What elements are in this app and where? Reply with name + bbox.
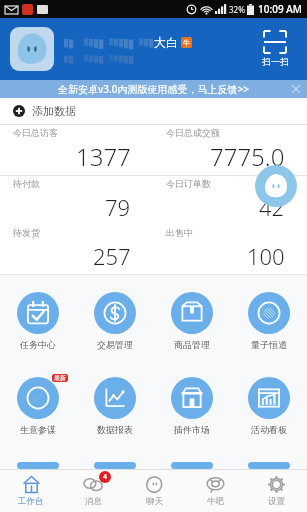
staticText: 活动看板 (251, 424, 287, 435)
staticText: 牛 (183, 38, 190, 47)
staticText: 交易管理 (97, 339, 133, 350)
button[interactable]: 今日总成交额 (153, 125, 307, 175)
button[interactable]: 最新 (0, 368, 76, 453)
staticText: 今日总访客 (13, 127, 58, 138)
button[interactable]: 插件市场 (153, 368, 230, 453)
button[interactable]: 量子恒道 (230, 283, 307, 368)
button[interactable] (76, 453, 153, 469)
staticText: 79 (105, 192, 131, 222)
button[interactable]: 聊天 (124, 470, 185, 512)
staticText: 最新 (54, 374, 66, 382)
button[interactable] (153, 453, 230, 469)
button[interactable] (0, 453, 76, 469)
staticText: 今日总成交额 (166, 127, 220, 138)
button[interactable]: 今日总访客 (0, 125, 153, 175)
staticText: 100 (247, 241, 285, 271)
staticText: 商品管理 (174, 339, 210, 350)
staticText: 大白 (154, 35, 178, 50)
button[interactable]: 4 (62, 470, 124, 512)
staticText: 1377 (76, 140, 131, 173)
button[interactable]: 工作台 (0, 470, 62, 512)
staticText: 4 (103, 472, 108, 482)
staticText: 设置 (268, 496, 285, 507)
staticText: 插件市场 (174, 424, 210, 435)
staticText: 聊天 (146, 496, 163, 507)
button[interactable]: 待发货 (0, 225, 153, 274)
button[interactable]: 设置 (246, 470, 307, 512)
staticText: 全新安卓v3.0内测版使用感受，马上反馈>> (58, 82, 249, 96)
staticText: 扫一扫 (262, 56, 289, 67)
staticText: 添加数据 (32, 104, 76, 118)
button[interactable]: 牛吧 (185, 470, 246, 512)
staticText: 量子恒道 (251, 339, 287, 350)
button[interactable]: 添加数据 (0, 98, 307, 124)
staticText: 32% (229, 4, 245, 15)
staticText: 257 (93, 241, 131, 271)
staticText: 今日订单数 (166, 178, 211, 189)
staticText: 出售中 (166, 227, 193, 238)
button[interactable]: Assistant (255, 165, 297, 207)
staticText: 待发货 (13, 227, 40, 238)
staticText: 牛吧 (207, 496, 224, 507)
staticText: 生意参谋 (20, 424, 56, 435)
button[interactable]: 今日订单数 (153, 176, 307, 225)
staticText: 任务中心 (20, 339, 56, 350)
button[interactable] (230, 453, 307, 469)
button[interactable]: Scan QR code (253, 18, 297, 80)
button[interactable]: Profile avatar (10, 27, 54, 71)
button[interactable]: 交易管理 (76, 283, 153, 368)
button[interactable]: 任务中心 (0, 283, 76, 368)
staticText: 消息 (85, 496, 102, 507)
staticText: 工作台 (18, 496, 44, 507)
staticText: 数据报表 (97, 424, 133, 435)
button[interactable]: Close banner (285, 80, 307, 98)
staticText: 10:09 AM (258, 2, 302, 16)
button[interactable]: 商品管理 (153, 283, 230, 368)
button[interactable]: 活动看板 (230, 368, 307, 453)
button[interactable]: 全新安卓v3.0内测版使用感受，马上反馈>> (0, 80, 307, 98)
button[interactable]: 出售中 (153, 225, 307, 274)
staticText: 42 (259, 192, 285, 222)
button[interactable]: 数据报表 (76, 368, 153, 453)
staticText: 7775.0 (210, 140, 285, 173)
staticText: 待付款 (13, 178, 40, 189)
button[interactable]: 待付款 (0, 176, 153, 225)
